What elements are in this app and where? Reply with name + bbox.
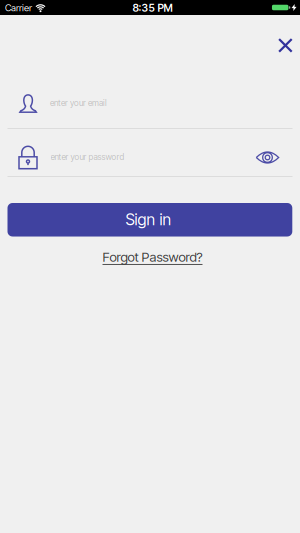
staticText: Sign in [125, 210, 171, 229]
staticText: Forgot Password? [102, 249, 202, 265]
staticText: Carrier [5, 2, 32, 14]
staticText: 8:35 PM [132, 1, 172, 14]
staticText: enter your password [50, 152, 124, 162]
staticText: enter your email [50, 98, 107, 108]
